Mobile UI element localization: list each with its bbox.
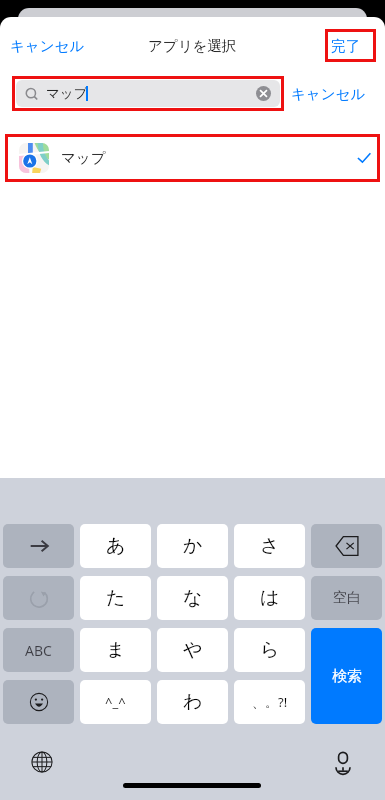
staticText: ABC xyxy=(25,641,52,660)
staticText: ^_^ xyxy=(105,693,126,711)
staticText: た xyxy=(106,586,126,610)
staticText: や xyxy=(183,638,203,662)
button[interactable]: マップ xyxy=(16,80,280,107)
staticText: ま xyxy=(106,638,126,662)
button[interactable]: Change keyboard xyxy=(22,742,62,782)
button[interactable]: Next xyxy=(3,524,74,568)
button[interactable]: キャンセル xyxy=(10,33,85,59)
button[interactable]: 空白 xyxy=(311,576,382,620)
button[interactable]: な xyxy=(157,576,228,620)
button[interactable]: Dictation xyxy=(323,742,363,782)
button[interactable]: キャンセル xyxy=(291,80,366,107)
staticText: わ xyxy=(183,690,203,714)
staticText: 空白 xyxy=(333,589,361,607)
button[interactable]: わ xyxy=(157,680,228,724)
staticText: さ xyxy=(260,534,280,558)
button[interactable]: ^_^ xyxy=(80,680,151,724)
staticText: アプリを選択 xyxy=(148,37,237,55)
button[interactable]: あ xyxy=(80,524,151,568)
button[interactable]: 、。?! xyxy=(234,680,305,724)
button[interactable]: Undo xyxy=(3,576,74,620)
staticText: ら xyxy=(260,638,280,662)
staticText: か xyxy=(183,534,203,558)
button[interactable]: 完了 xyxy=(331,33,360,59)
button[interactable]: Delete xyxy=(311,524,382,568)
staticText: キャンセル xyxy=(291,85,366,103)
staticText: は xyxy=(260,586,280,610)
staticText: マップ xyxy=(46,85,88,102)
button[interactable]: か xyxy=(157,524,228,568)
button[interactable]: さ xyxy=(234,524,305,568)
staticText: 完了 xyxy=(331,37,360,55)
button[interactable]: マップ xyxy=(5,134,380,182)
staticText: あ xyxy=(106,534,126,558)
staticText: 検索 xyxy=(332,667,362,686)
staticText: キャンセル xyxy=(10,37,85,55)
button[interactable]: ABC xyxy=(3,628,74,672)
button[interactable]: や xyxy=(157,628,228,672)
staticText: マップ xyxy=(61,149,106,167)
button[interactable]: 検索 xyxy=(311,628,382,724)
staticText: な xyxy=(183,586,203,610)
staticText: 、。?! xyxy=(252,693,288,711)
button[interactable]: ら xyxy=(234,628,305,672)
button[interactable]: Emoji xyxy=(3,680,74,724)
button[interactable]: ま xyxy=(80,628,151,672)
button[interactable]: は xyxy=(234,576,305,620)
button[interactable]: た xyxy=(80,576,151,620)
